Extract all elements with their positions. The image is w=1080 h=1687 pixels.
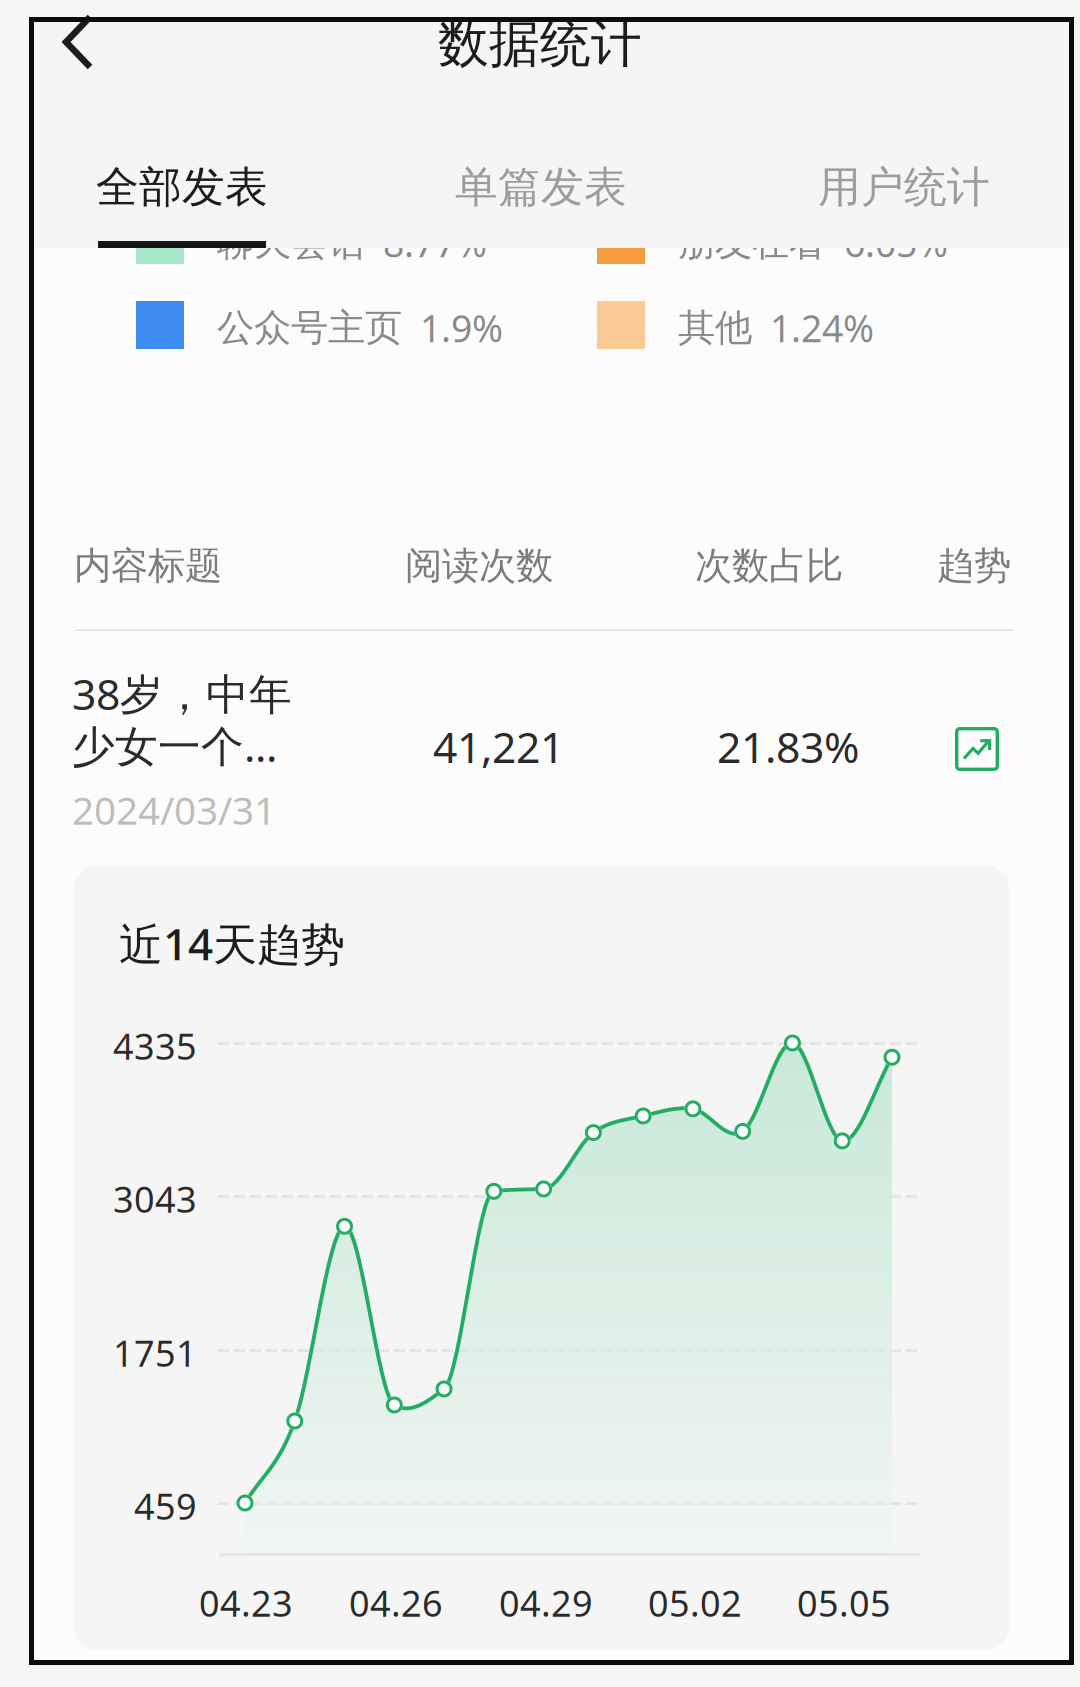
staticText: 1751	[113, 1329, 197, 1377]
button[interactable]: 用户统计	[818, 125, 1048, 247]
staticText: 04.26	[349, 1579, 443, 1627]
staticText: 阅读次数	[405, 543, 553, 589]
staticText: 38岁，中年	[72, 665, 292, 722]
staticText: 聊天会话	[217, 220, 365, 266]
staticText: 次数占比	[695, 543, 843, 589]
staticText: 内容标题	[74, 543, 222, 589]
staticText: 05.02	[648, 1579, 742, 1627]
staticText: 用户统计	[818, 161, 990, 213]
staticText: 3043	[113, 1175, 197, 1223]
staticText: 41,221	[433, 718, 564, 775]
staticText: 单篇发表	[455, 161, 627, 213]
staticText: 8.77%	[383, 218, 487, 268]
staticText: 21.83%	[717, 718, 859, 775]
staticText: 近14天趋势	[119, 914, 345, 972]
button[interactable]: 单篇发表	[455, 125, 685, 247]
staticText: 数据统计	[438, 13, 642, 75]
staticText: 其他	[678, 305, 752, 351]
staticText: 6.05%	[844, 218, 948, 268]
staticText: 少女一个...	[72, 717, 277, 774]
staticText: 04.23	[199, 1579, 293, 1627]
staticText: 459	[134, 1482, 197, 1530]
staticText: 朋友在看	[678, 220, 826, 266]
staticText: 1.24%	[770, 303, 874, 353]
staticText: 2024/03/31	[72, 784, 276, 835]
button[interactable]: 返回	[48, 4, 120, 80]
button[interactable]: 38岁，中年	[29, 17, 1074, 232]
staticText: 4335	[113, 1022, 197, 1070]
staticText: 04.29	[499, 1579, 593, 1627]
staticText: 趋势	[937, 543, 1011, 589]
staticText: 全部发表	[96, 161, 268, 213]
staticText: 05.05	[797, 1579, 891, 1627]
button[interactable]: 全部发表	[96, 125, 326, 247]
staticText: 公众号主页	[217, 305, 402, 351]
staticText: 1.9%	[420, 303, 503, 353]
